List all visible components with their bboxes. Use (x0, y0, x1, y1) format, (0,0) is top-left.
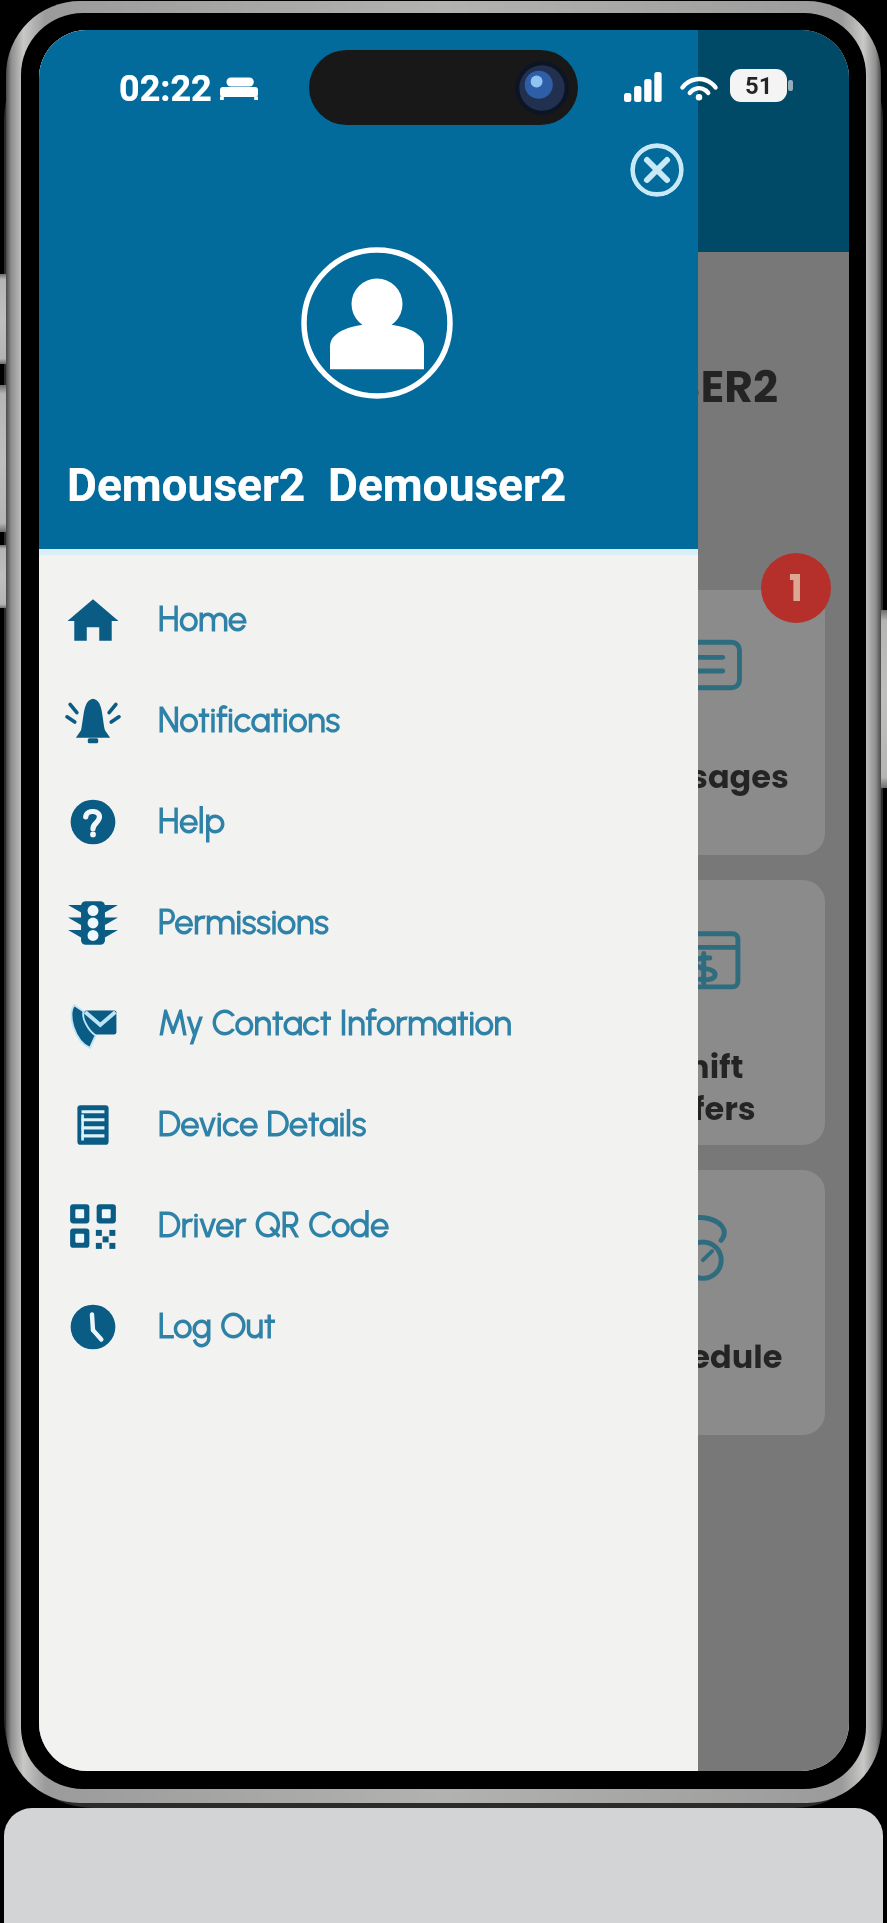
staticText: Messages (621, 754, 791, 799)
staticText: Schedule (621, 1334, 791, 1379)
button[interactable]: Messages (587, 590, 825, 855)
staticText: Notifications (158, 700, 341, 741)
staticText: Log Out (158, 1306, 276, 1347)
staticText: 51 (745, 72, 773, 100)
button[interactable]: Device Details (39, 1074, 698, 1175)
staticText: 1 (789, 563, 803, 613)
button[interactable]: Leave (324, 880, 562, 1145)
button[interactable]: Trips (324, 590, 562, 855)
button[interactable]: Timesheet (61, 880, 299, 1145)
staticText: Device Details (158, 1104, 367, 1145)
button[interactable]: Shift Offers (587, 880, 825, 1145)
staticText: Driver QR Code (158, 1205, 390, 1246)
button[interactable]: Permissions (39, 872, 698, 973)
button[interactable]: Help (39, 771, 698, 872)
staticText: Demouser2 Demouser2 (67, 458, 567, 512)
staticText: Timesheet (95, 1044, 265, 1131)
button[interactable]: Log Out (39, 1276, 698, 1377)
button[interactable]: Home (39, 569, 698, 670)
staticText: Permissions (158, 902, 329, 943)
button[interactable]: Jobs (61, 590, 299, 855)
button[interactable]: Schedule (587, 1170, 825, 1435)
staticText: Shift Offers (621, 1044, 791, 1131)
button[interactable]: Reports (324, 1170, 562, 1435)
staticText: WELCOME DEMOUSER2 (39, 356, 778, 418)
button[interactable]: Close drawer (630, 143, 684, 197)
button[interactable]: Driver QR Code (39, 1175, 698, 1276)
staticText: Payslips (95, 1334, 265, 1379)
staticText: My Contact Information (158, 1003, 512, 1044)
staticText: Home (158, 599, 247, 640)
staticText: Help (158, 801, 225, 842)
button[interactable]: Notifications (39, 670, 698, 771)
button[interactable]: Payslips (61, 1170, 299, 1435)
button[interactable]: My Contact Information (39, 973, 698, 1074)
staticText: 02:22 (119, 68, 212, 110)
